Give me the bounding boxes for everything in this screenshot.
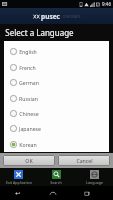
staticText: Japanese xyxy=(19,125,41,132)
staticText: German xyxy=(19,79,39,86)
staticText: Search xyxy=(50,180,62,185)
button[interactable]: English xyxy=(10,44,109,58)
staticText: Chinese xyxy=(19,110,39,117)
staticText: English xyxy=(19,48,37,55)
staticText: Language xyxy=(86,180,103,185)
staticText: Cancel xyxy=(76,157,93,164)
button[interactable]: Search xyxy=(37,168,75,186)
button[interactable]: OK xyxy=(3,155,55,166)
button[interactable]: French xyxy=(10,60,109,74)
button[interactable]: Back xyxy=(0,186,35,200)
button[interactable]: Home xyxy=(35,186,70,200)
button[interactable]: Japanese xyxy=(10,121,109,135)
button[interactable]: German xyxy=(10,75,109,89)
button[interactable]: Chinese xyxy=(10,106,109,120)
staticText: French xyxy=(19,64,36,71)
button[interactable]: Exit Application xyxy=(0,168,37,186)
button[interactable]: Cancel xyxy=(58,155,110,166)
button[interactable]: Language xyxy=(75,168,113,186)
staticText: Exit Application xyxy=(6,180,32,185)
button[interactable]: Russian xyxy=(10,91,109,105)
staticText: 9:46 xyxy=(102,1,111,7)
button[interactable]: Korean xyxy=(10,137,109,151)
staticText: OK xyxy=(25,157,33,164)
button[interactable]: Recents xyxy=(70,186,105,200)
staticText: CORPORATE xyxy=(62,15,81,19)
staticText: Select a Language xyxy=(5,27,74,38)
staticText: Russian xyxy=(19,95,38,102)
staticText: pusec xyxy=(41,12,60,21)
staticText: Korean xyxy=(19,141,37,148)
